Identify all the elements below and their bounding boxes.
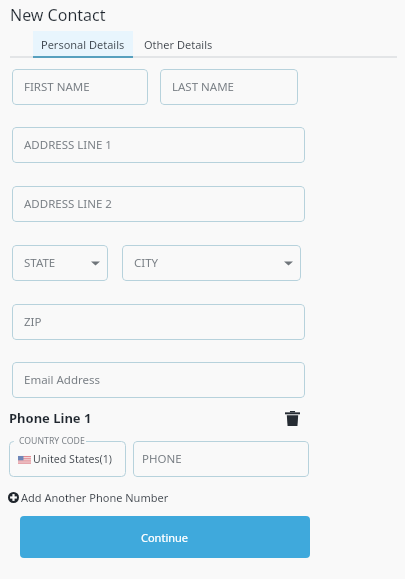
button[interactable]: Continue [20,516,310,558]
staticText: ADDRESS LINE 2 [24,196,112,212]
button[interactable]: FIRST NAME [12,69,148,105]
button[interactable]: ZIP [12,304,305,340]
staticText: STATE [24,255,56,271]
button[interactable]: Delete phone line [280,406,304,430]
staticText: Add Another Phone Number [21,490,169,505]
staticText: ZIP [24,314,42,330]
staticText: Continue [141,530,189,545]
button[interactable]: CITY [122,245,301,281]
staticText: LAST NAME [172,79,234,95]
staticText: New Contact [10,4,106,26]
staticText: Phone Line 1 [9,409,92,427]
staticText: FIRST NAME [24,79,90,95]
button[interactable]: PHONE [133,441,309,477]
button[interactable]: Email Address [12,362,305,398]
button[interactable]: Add Another Phone Number [8,487,169,507]
staticText: COUNTRY CODE [19,435,85,447]
button[interactable]: Other Details [133,31,224,58]
button[interactable]: United States(1) [9,441,126,477]
button[interactable]: LAST NAME [160,69,298,105]
button[interactable]: STATE [12,245,108,281]
staticText: Personal Details [41,37,125,52]
staticText: United States(1) [33,452,112,466]
button[interactable]: Personal Details [33,31,133,58]
staticText: Email Address [24,372,101,388]
button[interactable]: ADDRESS LINE 2 [12,186,305,222]
staticText: CITY [134,255,159,271]
staticText: ADDRESS LINE 1 [24,137,112,153]
staticText: Other Details [144,37,213,52]
button[interactable]: ADDRESS LINE 1 [12,127,305,163]
staticText: PHONE [142,451,182,467]
